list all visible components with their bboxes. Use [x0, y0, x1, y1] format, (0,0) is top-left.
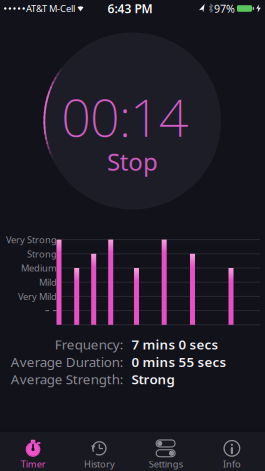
staticText: Strong — [131, 370, 174, 388]
staticText: Medium — [21, 262, 57, 274]
staticText: 0 mins 55 secs — [131, 353, 226, 371]
button[interactable]: Info — [199, 432, 265, 471]
staticText: 97% — [214, 1, 235, 16]
button[interactable]: History — [66, 432, 132, 471]
staticText: Stop — [107, 146, 158, 177]
staticText: Strong — [27, 248, 57, 260]
staticText: Info — [223, 458, 241, 470]
staticText: 00:14 — [61, 82, 189, 151]
staticText: Settings — [149, 458, 183, 470]
staticText: AT&T M-Cell — [26, 2, 75, 15]
staticText: Average Duration: — [11, 353, 124, 371]
staticText: Very Strong — [6, 233, 57, 246]
staticText: Very Mild — [18, 290, 57, 303]
staticText: History — [84, 458, 115, 470]
button[interactable]: Timer — [0, 432, 66, 471]
staticText: Frequency: — [55, 335, 124, 353]
staticText: Mild — [39, 276, 57, 288]
button[interactable]: Settings — [132, 432, 199, 471]
button[interactable]: 00:14 — [44, 32, 221, 209]
staticText: Average Strength: — [11, 370, 124, 388]
staticText: 7 mins 0 secs — [131, 335, 218, 353]
staticText: 6:43 PM — [107, 0, 152, 16]
staticText: Timer — [21, 458, 46, 470]
